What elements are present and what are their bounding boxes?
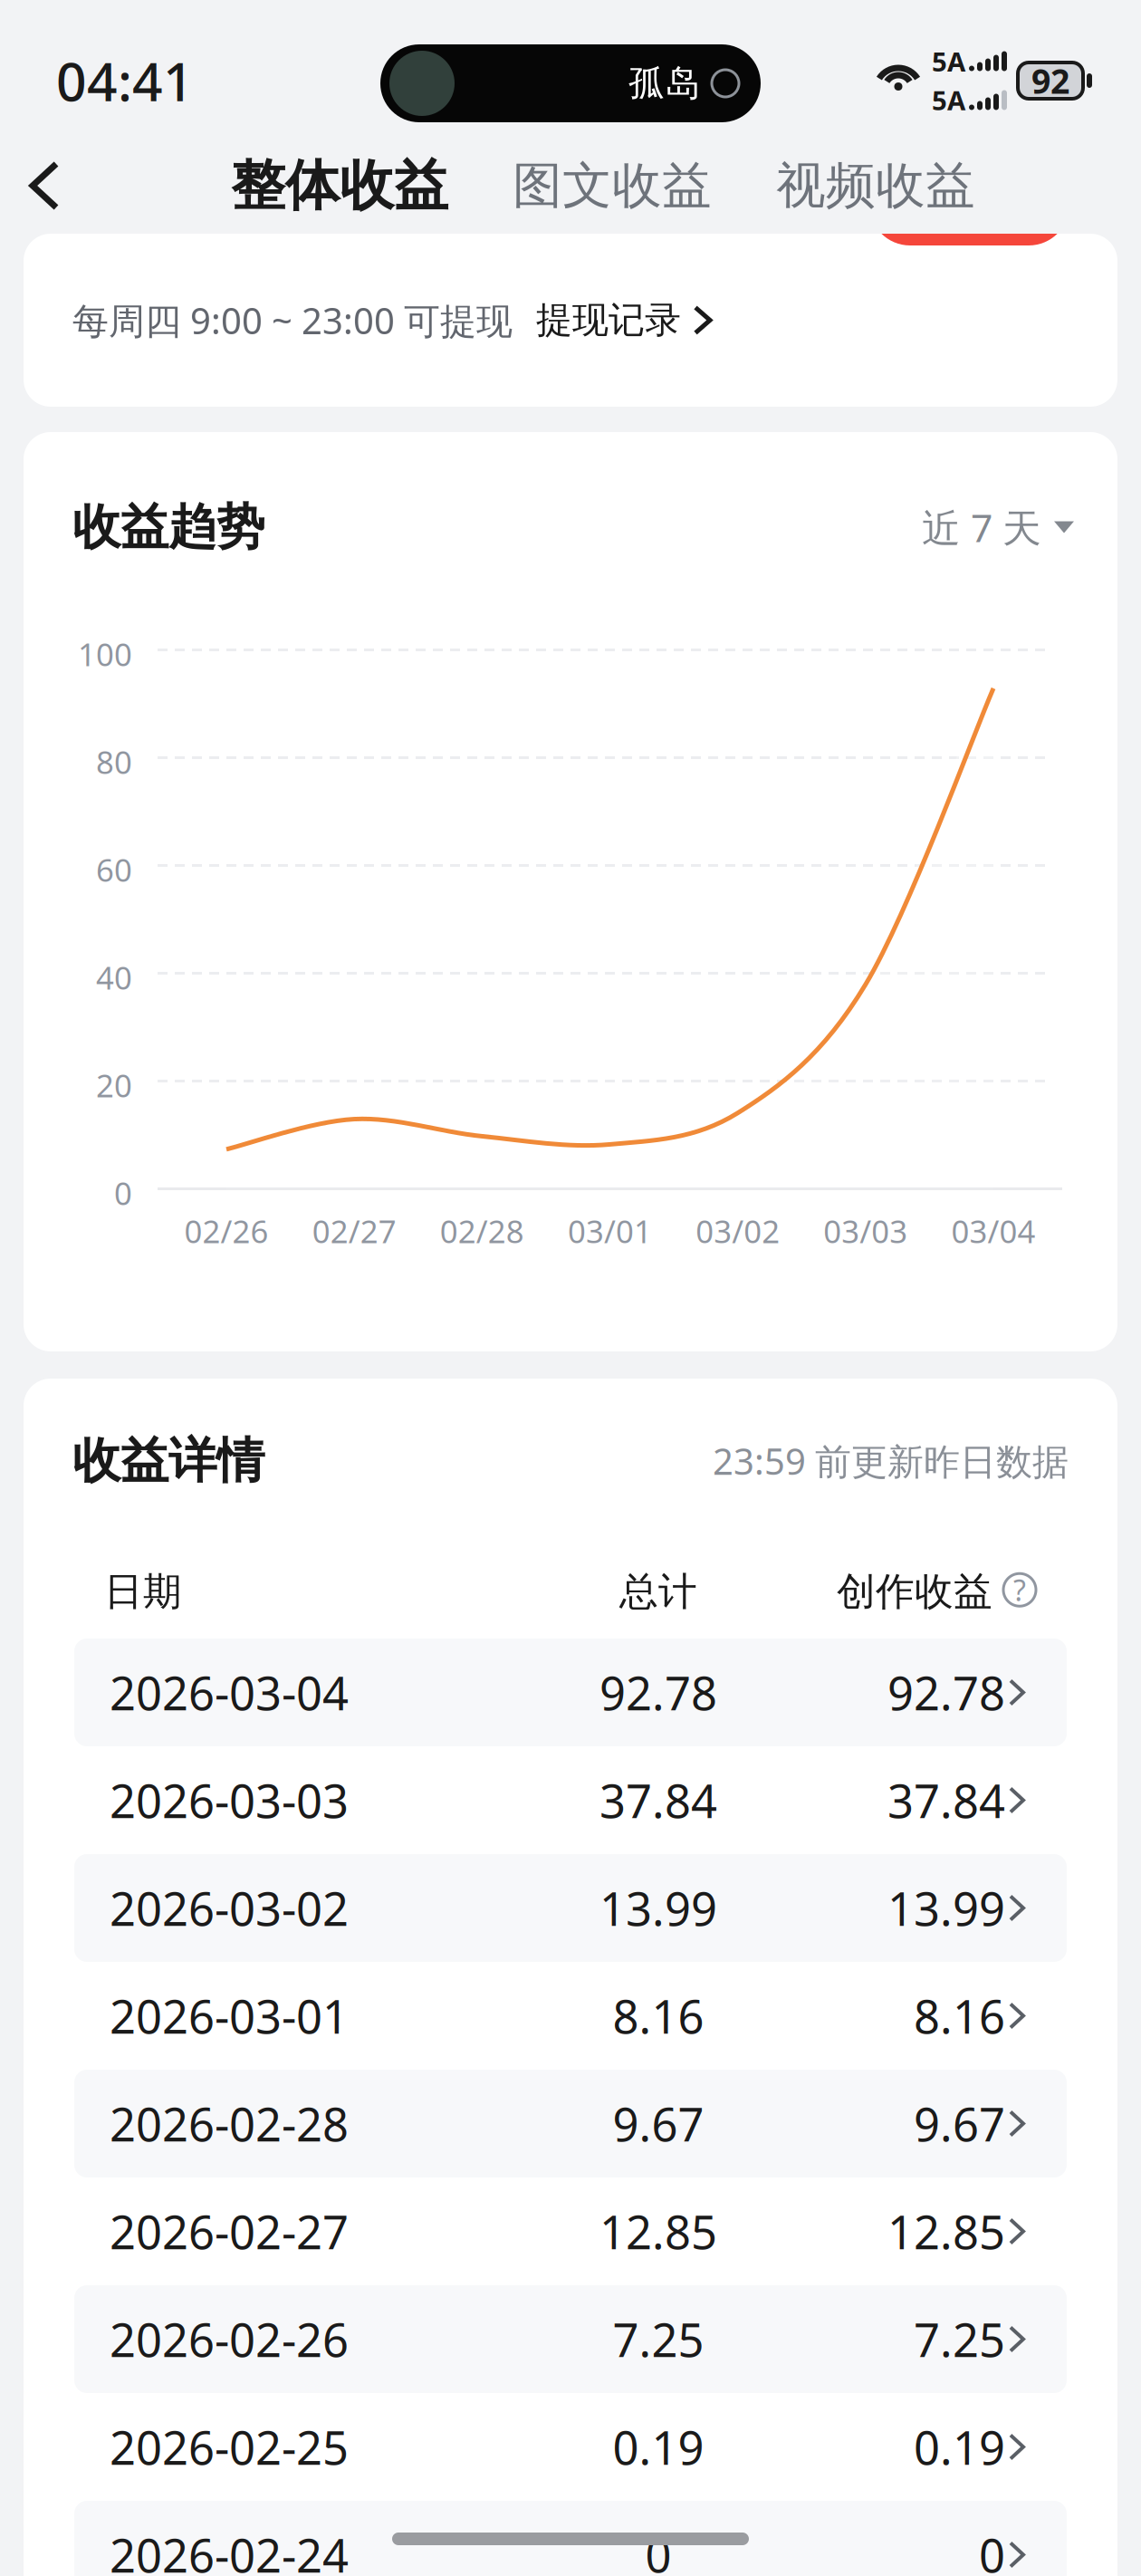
staticText: 7.25 — [613, 2309, 704, 2370]
staticText: 80 — [96, 741, 132, 783]
staticText: 03/01 — [568, 1210, 652, 1252]
button[interactable]: 2026-02-26 — [74, 2285, 1067, 2393]
staticText: 03/04 — [951, 1210, 1036, 1252]
button[interactable]: 2026-03-02 — [74, 1854, 1067, 1962]
staticText: 40 — [96, 956, 132, 998]
staticText: 02/27 — [312, 1210, 396, 1252]
staticText: 视频收益 — [776, 155, 975, 216]
staticText: 100 — [78, 633, 132, 675]
staticText: 2026-02-25 — [110, 2416, 349, 2477]
staticText: 日期 — [104, 1568, 182, 1615]
staticText: 总计 — [619, 1568, 697, 1615]
button[interactable]: 2026-02-28 — [74, 2070, 1067, 2177]
staticText: 8.16 — [914, 1985, 1005, 2046]
staticText: 13.99 — [599, 1878, 717, 1939]
staticText: 2026-02-27 — [110, 2201, 349, 2262]
staticText: ? — [1013, 1571, 1026, 1609]
staticText: 9.67 — [914, 2093, 1005, 2154]
staticText: 0 — [645, 2524, 671, 2576]
button[interactable]: 2026-02-27 — [74, 2177, 1067, 2285]
button[interactable]: 2026-02-25 — [74, 2393, 1067, 2501]
staticText: 整体收益 — [231, 152, 448, 219]
staticText: 92 — [1031, 58, 1069, 103]
button[interactable]: 2026-03-04 — [74, 1639, 1067, 1746]
button[interactable]: 2026-03-01 — [74, 1962, 1067, 2070]
staticText: 8.16 — [613, 1985, 704, 2046]
staticText: 03/03 — [823, 1210, 908, 1252]
button[interactable]: 近 7 天 — [922, 502, 1074, 553]
staticText: 2026-02-28 — [110, 2093, 349, 2154]
button[interactable]: 整体收益 — [231, 143, 448, 228]
button[interactable]: 2026-03-03 — [74, 1746, 1067, 1854]
staticText: 收益详情 — [72, 1431, 264, 1490]
staticText: 92.78 — [887, 1662, 1005, 1723]
staticText: 04:41 — [56, 45, 194, 116]
staticText: 2026-03-02 — [110, 1878, 349, 1939]
staticText: 0 — [114, 1172, 132, 1214]
staticText: 5A — [932, 82, 965, 118]
staticText: 37.84 — [887, 1770, 1005, 1831]
staticText: 每周四 9:00 ~ 23:00 可提现 — [72, 296, 513, 344]
button[interactable]: 图文收益 — [513, 146, 712, 225]
staticText: 37.84 — [599, 1770, 717, 1831]
staticText: 创作收益 — [837, 1568, 992, 1615]
staticText: 03/02 — [696, 1210, 780, 1252]
staticText: 提现记录 — [536, 298, 681, 342]
staticText: 0.19 — [914, 2416, 1005, 2477]
staticText: 20 — [96, 1064, 132, 1106]
staticText: 近 7 天 — [922, 502, 1041, 553]
staticText: 图文收益 — [513, 155, 712, 216]
staticText: 2026-02-24 — [110, 2524, 349, 2576]
staticText: 92.78 — [599, 1662, 717, 1723]
button[interactable]: 2026-02-24 — [74, 2501, 1067, 2576]
staticText: 9.67 — [613, 2093, 704, 2154]
staticText: 2026-03-04 — [110, 1662, 349, 1723]
staticText: 12.85 — [887, 2201, 1005, 2262]
staticText: 2026-03-01 — [110, 1985, 349, 2046]
button[interactable]: 返回 — [0, 142, 89, 229]
staticText: 5A — [932, 43, 965, 79]
staticText: 02/26 — [184, 1210, 268, 1252]
staticText: 2026-03-03 — [110, 1770, 349, 1831]
staticText: 7.25 — [914, 2309, 1005, 2370]
staticText: 60 — [96, 849, 132, 890]
staticText: 2026-02-26 — [110, 2309, 349, 2370]
staticText: 孤岛 — [628, 61, 701, 106]
staticText: 23:59 前更新昨日数据 — [713, 1437, 1069, 1485]
button[interactable]: 每周四 9:00 ~ 23:00 可提现 — [24, 234, 1117, 407]
staticText: 0.19 — [613, 2416, 704, 2477]
staticText: 12.85 — [599, 2201, 717, 2262]
staticText: 0 — [979, 2524, 1005, 2576]
button[interactable]: 视频收益 — [776, 146, 975, 225]
staticText: 收益趋势 — [72, 497, 264, 557]
staticText: 13.99 — [887, 1878, 1005, 1939]
staticText: 02/28 — [440, 1210, 524, 1252]
